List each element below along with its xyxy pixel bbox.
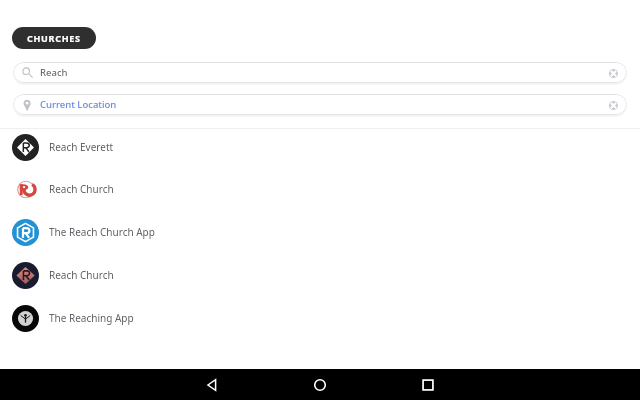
button[interactable]: Clear xyxy=(606,66,620,80)
button[interactable]: Reach xyxy=(13,62,627,83)
staticText: CHURCHES xyxy=(27,32,81,44)
button[interactable]: The Reach Church App xyxy=(0,211,640,253)
button[interactable]: Home xyxy=(304,369,335,400)
staticText: The Reach Church App xyxy=(49,225,155,239)
staticText: Reach Everett xyxy=(49,140,114,154)
staticText: Reach xyxy=(40,66,68,79)
button[interactable]: Clear xyxy=(606,98,620,112)
staticText: Reach Church xyxy=(49,182,114,196)
button[interactable]: Recents xyxy=(412,369,443,400)
button[interactable]: Reach Church xyxy=(0,168,640,210)
staticText: Current Location xyxy=(40,98,117,111)
staticText: Reach Church xyxy=(49,268,114,282)
button[interactable]: Back xyxy=(196,369,227,400)
button[interactable]: The Reaching App xyxy=(0,297,640,339)
button[interactable]: Reach Church xyxy=(0,254,640,296)
staticText: The Reaching App xyxy=(49,311,134,325)
button[interactable]: CHURCHES xyxy=(12,27,96,49)
button[interactable]: Current Location xyxy=(13,94,627,115)
button[interactable]: Reach Everett xyxy=(0,126,640,168)
